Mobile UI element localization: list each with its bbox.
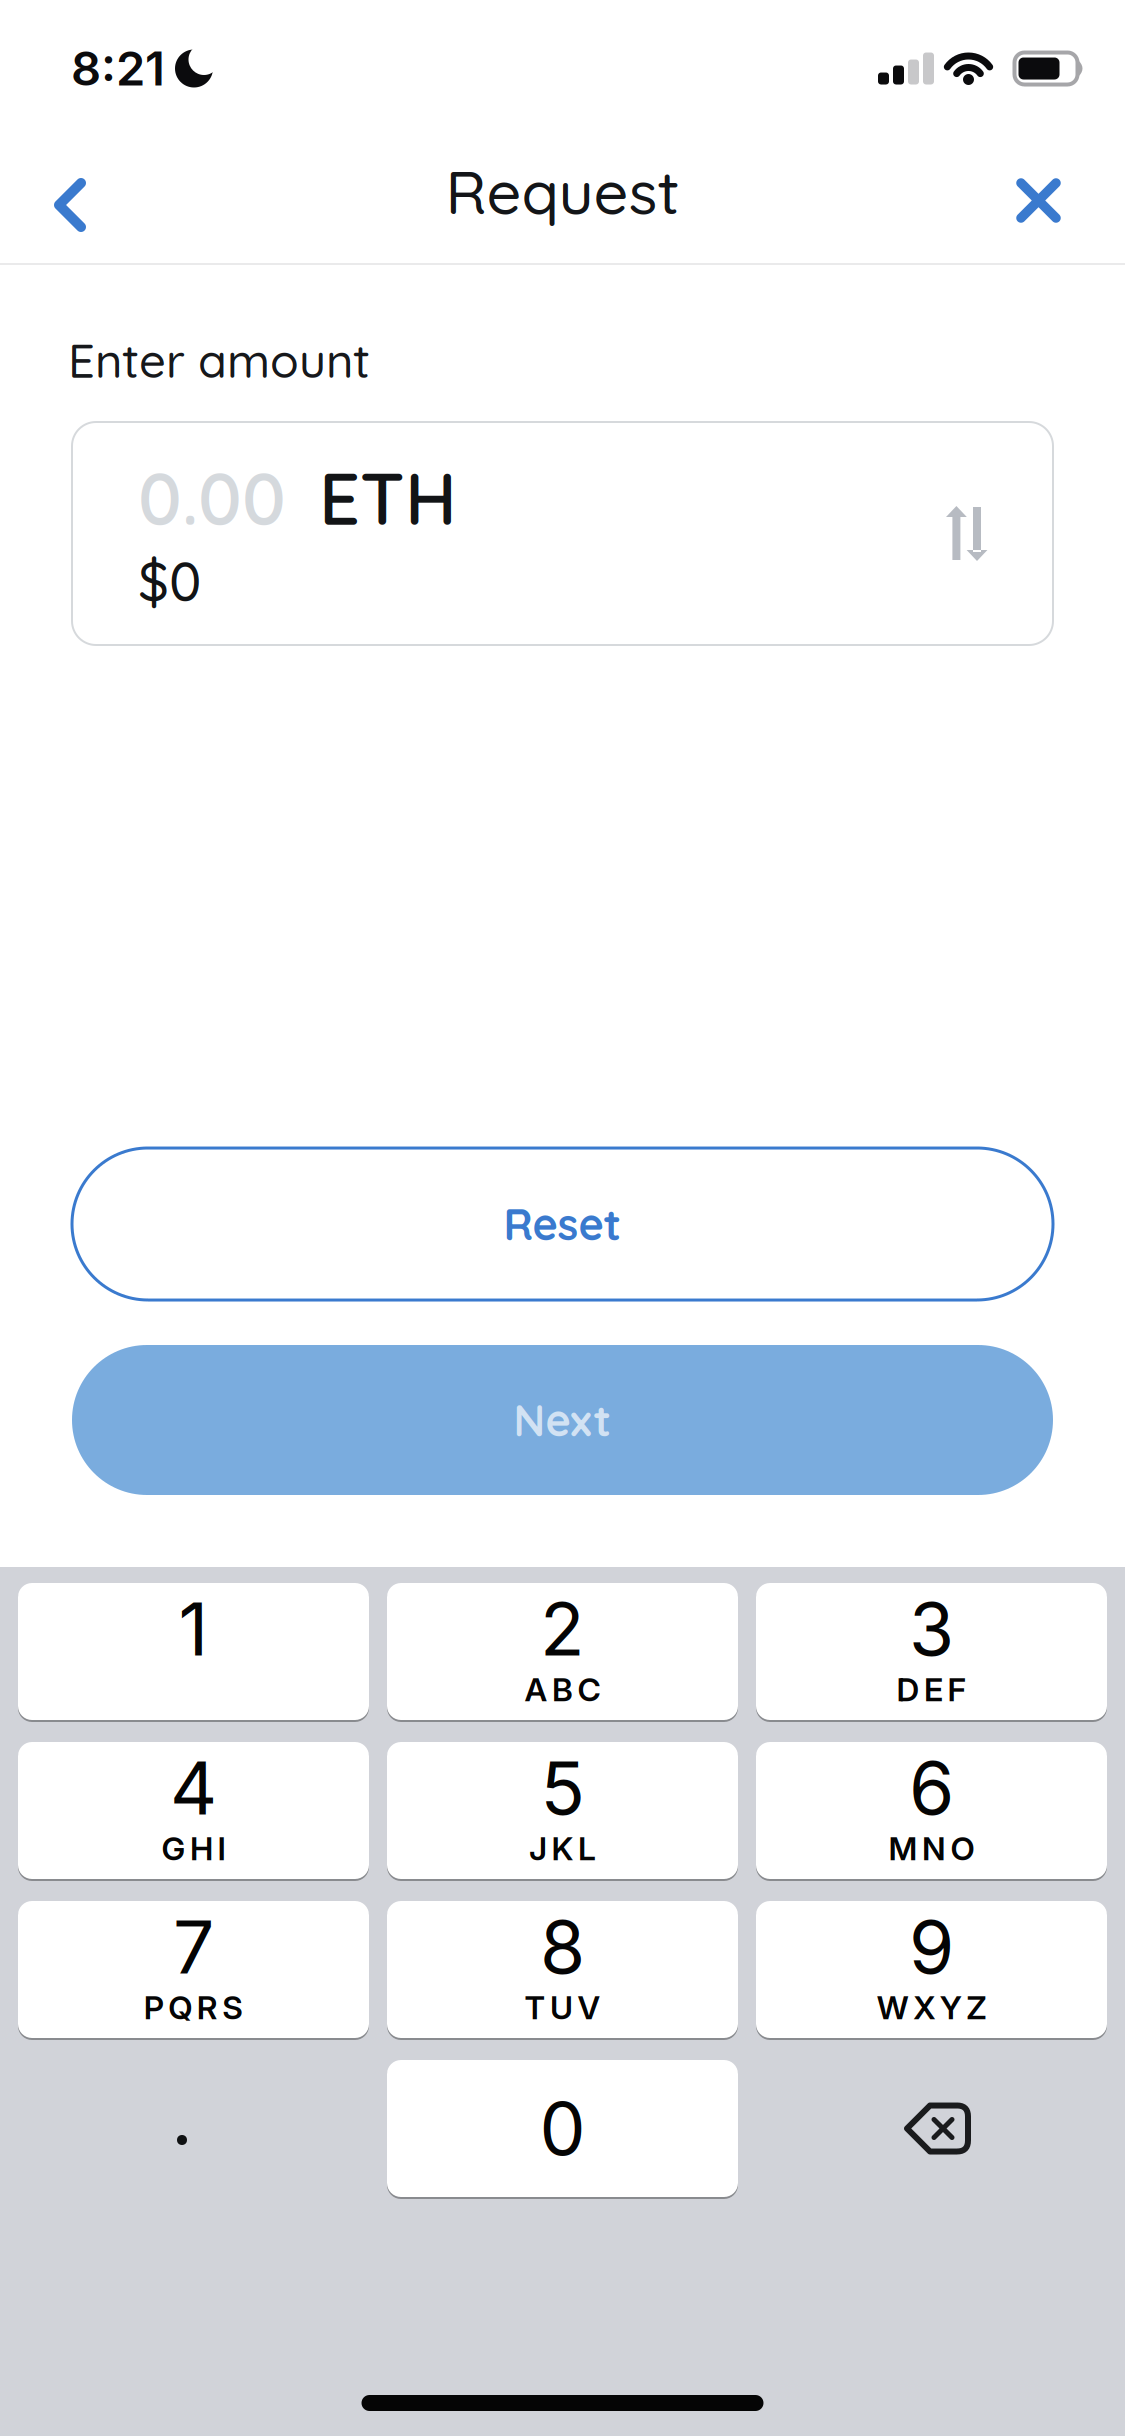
staticText: JKL bbox=[529, 1829, 596, 1868]
button[interactable]: Reset bbox=[72, 1148, 1053, 1300]
button[interactable]: 1 bbox=[18, 1583, 369, 1720]
staticText: Request bbox=[445, 153, 679, 229]
button[interactable]: Close bbox=[1003, 165, 1073, 235]
staticText: Next bbox=[513, 1393, 611, 1447]
button[interactable]: Back bbox=[40, 168, 100, 242]
staticText: ETH bbox=[319, 453, 457, 543]
staticText: 7 bbox=[173, 1903, 214, 1991]
staticText: Reset bbox=[503, 1197, 621, 1251]
button[interactable]: 0 bbox=[387, 2060, 738, 2197]
button[interactable]: Decimal point bbox=[6, 2071, 357, 2208]
button[interactable]: 3 bbox=[756, 1583, 1107, 1720]
staticText: GHI bbox=[161, 1829, 225, 1868]
staticText: TUV bbox=[524, 1988, 600, 2027]
staticText: 0.00 bbox=[138, 453, 286, 543]
staticText: 3 bbox=[909, 1585, 954, 1673]
button[interactable]: Switch currency bbox=[946, 506, 988, 561]
staticText: WXYZ bbox=[877, 1988, 986, 2027]
staticText: $0 bbox=[138, 547, 201, 614]
button[interactable]: 6 bbox=[756, 1742, 1107, 1879]
staticText: ABC bbox=[524, 1670, 600, 1709]
staticText: 9 bbox=[909, 1903, 954, 1991]
staticText: 8 bbox=[540, 1903, 585, 1991]
button[interactable]: 8 bbox=[387, 1901, 738, 2038]
staticText: 6 bbox=[909, 1744, 954, 1832]
staticText: Enter amount bbox=[68, 331, 370, 389]
staticText: 5 bbox=[540, 1744, 584, 1832]
button[interactable]: 4 bbox=[18, 1742, 369, 1879]
staticText: 2 bbox=[540, 1585, 585, 1673]
staticText: DEF bbox=[896, 1670, 966, 1709]
button[interactable]: Delete bbox=[763, 2060, 1114, 2197]
staticText: MNO bbox=[888, 1829, 974, 1868]
button[interactable]: Next bbox=[72, 1345, 1053, 1495]
staticText: PQRS bbox=[144, 1988, 243, 2027]
staticText: 8:21 bbox=[71, 40, 165, 97]
staticText: 1 bbox=[178, 1585, 208, 1673]
staticText: 0 bbox=[539, 2084, 585, 2173]
button[interactable]: 5 bbox=[387, 1742, 738, 1879]
staticText: 4 bbox=[170, 1744, 217, 1832]
button[interactable]: 7 bbox=[18, 1901, 369, 2038]
button[interactable]: 9 bbox=[756, 1901, 1107, 2038]
button[interactable]: 2 bbox=[387, 1583, 738, 1720]
